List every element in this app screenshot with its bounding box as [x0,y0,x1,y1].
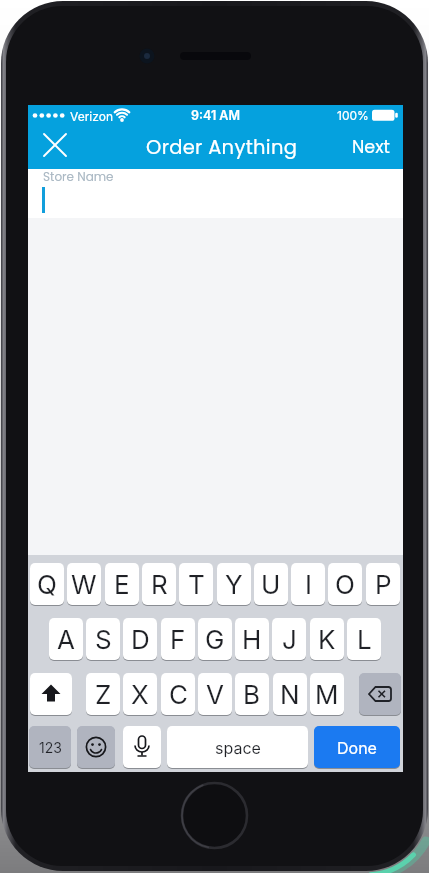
button[interactable]: I [291,563,325,605]
button[interactable]: V [198,673,232,715]
staticText: X [131,679,149,710]
staticText: O [335,569,355,600]
button[interactable] [30,673,72,715]
button[interactable]: F [161,618,195,660]
button[interactable]: A [49,618,83,660]
button[interactable]: C [161,673,195,715]
button[interactable]: P [366,563,400,605]
staticText: P [375,569,392,600]
staticText: Order Anything [146,134,298,161]
staticText: D [131,624,150,655]
staticText: T [188,569,205,600]
staticText: Verizon [70,109,114,124]
button[interactable]: Q [30,563,64,605]
button[interactable]: B [235,673,269,715]
staticText: Next [352,135,390,160]
staticText: S [95,624,112,655]
button[interactable]: X [123,673,157,715]
button[interactable] [359,673,401,715]
button[interactable] [43,133,67,157]
staticText: G [205,624,225,655]
staticText: H [242,624,262,655]
staticText: 123 [39,739,62,756]
staticText: A [57,624,75,655]
button[interactable]: space [167,726,308,768]
button[interactable]: J [272,618,306,660]
button[interactable]: O [328,563,362,605]
button[interactable]: L [347,618,381,660]
staticText: Q [37,569,57,600]
staticText: F [170,624,186,655]
staticText: Store Name [43,168,114,185]
button[interactable]: Next [340,125,390,169]
staticText: M [315,679,339,710]
staticText: 9:41 AM [191,108,240,123]
staticText: N [280,679,300,710]
staticText: Z [95,679,112,710]
button[interactable]: K [310,618,344,660]
button[interactable]: Y [217,563,251,605]
button[interactable]: Done [314,726,400,768]
button[interactable]: G [198,618,232,660]
button[interactable]: U [254,563,288,605]
button[interactable]: Z [86,673,120,715]
button[interactable] [123,726,161,768]
button[interactable]: W [67,563,101,605]
staticText: U [261,569,281,600]
button[interactable]: E [105,563,139,605]
button[interactable]: R [142,563,176,605]
staticText: C [169,679,188,710]
staticText: E [114,569,130,600]
button[interactable] [77,726,115,768]
staticText: space [215,738,261,757]
staticText: L [357,624,372,655]
staticText: Done [337,738,377,757]
staticText: J [282,624,297,655]
staticText: K [318,624,336,655]
button[interactable]: 123 [29,726,71,768]
staticText: V [206,679,224,710]
button[interactable]: D [123,618,157,660]
button[interactable]: Store Name [28,169,403,218]
staticText: I [305,569,312,600]
staticText: R [151,569,168,600]
button[interactable]: T [179,563,213,605]
button[interactable]: M [310,673,344,715]
button[interactable]: S [86,618,120,660]
staticText: Y [225,569,243,600]
staticText: 100% [337,108,369,123]
button[interactable]: H [235,618,269,660]
button[interactable]: N [273,673,307,715]
staticText: W [71,569,97,600]
staticText: B [243,679,261,710]
